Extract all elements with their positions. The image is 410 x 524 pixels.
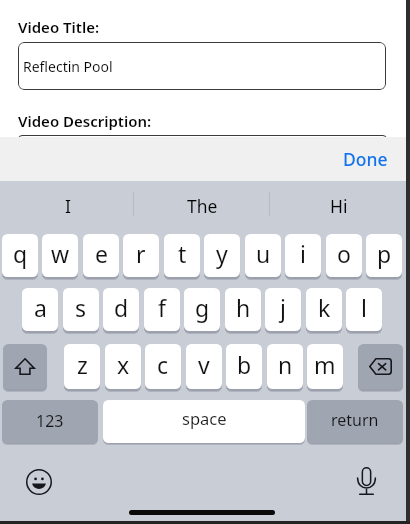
staticText: r: [136, 238, 146, 269]
button[interactable]: m: [307, 344, 343, 389]
staticText: m: [314, 349, 336, 380]
staticText: a: [34, 292, 47, 323]
button[interactable]: o: [326, 234, 362, 277]
staticText: Hi: [330, 194, 348, 218]
button[interactable]: Backspace: [358, 344, 403, 389]
staticText: g: [195, 292, 210, 323]
button[interactable]: k: [306, 288, 342, 331]
staticText: k: [318, 292, 331, 323]
staticText: t: [178, 238, 187, 269]
button[interactable]: q: [2, 234, 38, 277]
staticText: l: [361, 292, 367, 323]
button[interactable]: h: [225, 288, 261, 331]
button[interactable]: t: [164, 234, 200, 277]
staticText: o: [337, 238, 351, 269]
button[interactable]: d: [103, 288, 139, 331]
button[interactable]: n: [267, 344, 303, 389]
button[interactable]: Return: [307, 400, 403, 443]
staticText: s: [75, 292, 87, 323]
button[interactable]: e: [83, 234, 119, 277]
staticText: return: [331, 409, 379, 431]
button[interactable]: c: [145, 344, 181, 389]
staticText: Video Description:: [18, 111, 152, 131]
staticText: space: [182, 407, 227, 429]
button[interactable]: r: [123, 234, 159, 277]
button[interactable]: I: [0, 184, 135, 228]
staticText: e: [95, 238, 108, 269]
staticText: v: [198, 349, 210, 380]
button[interactable]: i: [285, 234, 321, 277]
button[interactable]: The: [135, 184, 270, 228]
button[interactable]: j: [265, 288, 301, 331]
staticText: q: [13, 238, 28, 269]
staticText: The: [187, 194, 218, 218]
staticText: h: [236, 292, 251, 323]
staticText: w: [51, 238, 70, 269]
button[interactable]: y: [204, 234, 240, 277]
staticText: z: [77, 349, 88, 380]
button[interactable]: Numbers: [2, 400, 98, 443]
button[interactable]: l: [346, 288, 382, 331]
button[interactable]: u: [245, 234, 281, 277]
button[interactable]: v: [186, 344, 222, 389]
staticText: Done: [343, 147, 388, 171]
button[interactable]: z: [64, 344, 100, 389]
button[interactable]: a: [22, 288, 58, 331]
button[interactable]: g: [184, 288, 220, 331]
button[interactable]: b: [226, 344, 262, 389]
staticText: i: [300, 238, 306, 269]
staticText: p: [377, 238, 392, 269]
staticText: c: [157, 349, 169, 380]
staticText: y: [216, 238, 228, 269]
staticText: j: [280, 292, 286, 323]
staticText: x: [117, 349, 130, 380]
button[interactable]: Done: [343, 147, 388, 171]
button[interactable]: Space: [103, 400, 305, 443]
staticText: n: [278, 349, 293, 380]
staticText: 123: [36, 410, 64, 432]
staticText: d: [114, 292, 129, 323]
staticText: Reflectin Pool: [23, 57, 113, 76]
button[interactable]: w: [42, 234, 78, 277]
button[interactable]: Shift: [3, 344, 47, 389]
button[interactable]: s: [63, 288, 99, 331]
button[interactable]: Dictation: [346, 461, 386, 501]
button[interactable]: Reflectin Pool: [18, 42, 386, 90]
button[interactable]: Emoji keyboard: [19, 462, 59, 502]
button[interactable]: x: [105, 344, 141, 389]
staticText: I: [65, 194, 71, 218]
button[interactable]: p: [366, 234, 402, 277]
staticText: u: [256, 238, 271, 269]
staticText: f: [158, 292, 166, 323]
staticText: Video Title:: [18, 17, 100, 37]
staticText: b: [237, 349, 252, 380]
button[interactable]: f: [144, 288, 180, 331]
button[interactable]: Hi: [271, 184, 406, 228]
